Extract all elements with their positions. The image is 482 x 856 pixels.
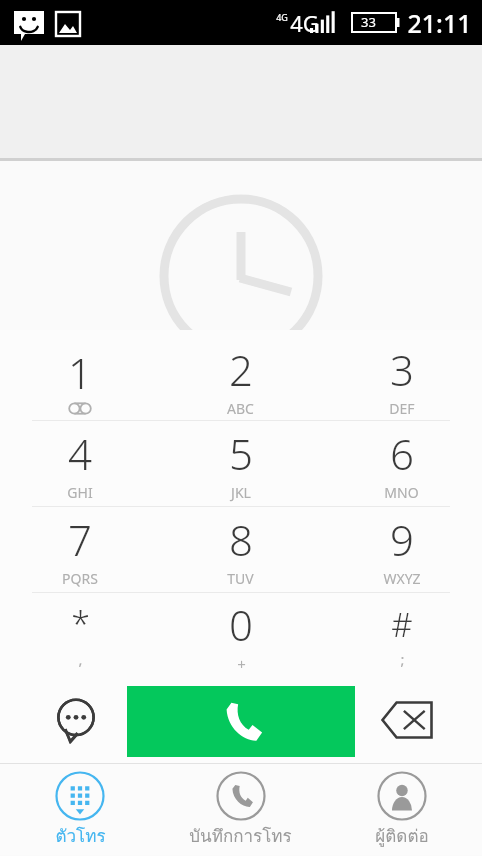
staticText: + <box>237 654 246 674</box>
staticText: 21:11 <box>407 6 472 40</box>
staticText: # <box>391 602 413 647</box>
button[interactable]: Send message <box>40 684 112 756</box>
staticText: 4G <box>290 8 319 38</box>
staticText: MNO <box>384 483 419 502</box>
button[interactable]: 8 <box>160 507 321 592</box>
button[interactable]: 7 <box>0 507 160 592</box>
button[interactable]: * <box>0 593 160 677</box>
staticText: ABC <box>227 399 254 418</box>
staticText: 7 <box>68 511 92 568</box>
staticText: JKL <box>231 483 251 502</box>
staticText: ผู้ติดต่อ <box>375 822 429 849</box>
staticText: DEF <box>389 399 415 418</box>
staticText: บันทึกการโทร <box>189 822 292 849</box>
staticText: 5 <box>229 425 253 482</box>
button[interactable]: ผู้ติดต่อ <box>321 764 482 855</box>
staticText: ตัวโทร <box>55 822 106 849</box>
button[interactable]: Backspace <box>371 684 443 756</box>
button[interactable]: 1 <box>0 330 160 420</box>
button[interactable]: 9 <box>321 507 482 592</box>
button[interactable]: # <box>321 593 482 677</box>
staticText: 33 <box>361 13 376 31</box>
staticText: TUV <box>227 569 254 588</box>
staticText: 2 <box>229 341 253 398</box>
button[interactable]: ตัวโทร <box>0 764 160 855</box>
staticText: 8 <box>229 511 253 568</box>
staticText: WXYZ <box>383 569 421 588</box>
button[interactable]: 4 <box>0 421 160 506</box>
staticText: 1 <box>68 344 92 401</box>
staticText: 3 <box>390 341 414 398</box>
staticText: * <box>71 601 90 647</box>
staticText: 4G <box>276 11 288 23</box>
button[interactable]: 3 <box>321 330 482 420</box>
staticText: GHI <box>67 483 93 502</box>
button[interactable]: บันทึกการโทร <box>160 764 321 855</box>
staticText: 0 <box>229 596 253 653</box>
button[interactable]: 6 <box>321 421 482 506</box>
button[interactable]: Call <box>127 686 355 757</box>
staticText: PQRS <box>62 569 98 588</box>
button[interactable]: 0 <box>160 593 321 677</box>
staticText: 4 <box>68 425 92 482</box>
staticText: 9 <box>390 511 414 568</box>
staticText: , <box>78 649 83 669</box>
staticText: ; <box>400 649 405 669</box>
button[interactable]: 2 <box>160 330 321 420</box>
button[interactable]: 5 <box>160 421 321 506</box>
staticText: 6 <box>390 425 414 482</box>
